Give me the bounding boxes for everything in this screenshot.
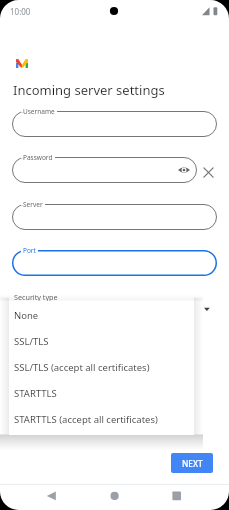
button[interactable]: STARTTLS (accept all certificates) <box>9 406 194 432</box>
staticText: SSL/TLS (accept all certificates) <box>14 361 150 374</box>
button[interactable]: SSL/TLS (accept all certificates) <box>9 354 194 380</box>
staticText: Port <box>23 246 36 255</box>
button[interactable]: Username <box>12 111 217 137</box>
staticText: None <box>14 309 39 322</box>
button[interactable]: Recent apps <box>164 484 189 510</box>
staticText: Server <box>23 200 43 209</box>
button[interactable]: Clear password <box>200 164 217 181</box>
staticText: 10:00 <box>10 6 31 17</box>
staticText: STARTTLS (accept all certificates) <box>14 413 158 426</box>
button[interactable]: Port <box>12 250 217 276</box>
button[interactable]: Show password <box>176 162 192 178</box>
button[interactable]: STARTTLS <box>9 380 194 406</box>
button[interactable]: Password <box>12 157 197 183</box>
staticText: Incoming server settings <box>13 81 165 99</box>
button[interactable]: Back <box>39 484 64 510</box>
staticText: STARTTLS <box>14 387 57 400</box>
button[interactable]: NEXT <box>171 453 213 473</box>
button[interactable]: SSL/TLS <box>9 328 194 354</box>
button[interactable]: Open security type dropdown <box>203 304 214 315</box>
staticText: Username <box>23 107 55 116</box>
button[interactable]: Server <box>12 204 217 230</box>
staticText: Password <box>23 153 53 162</box>
button[interactable]: Home <box>102 484 127 510</box>
staticText: SSL/TLS <box>14 335 49 348</box>
staticText: Security type <box>14 292 58 302</box>
button[interactable]: None <box>9 302 194 328</box>
staticText: NEXT <box>182 458 203 469</box>
